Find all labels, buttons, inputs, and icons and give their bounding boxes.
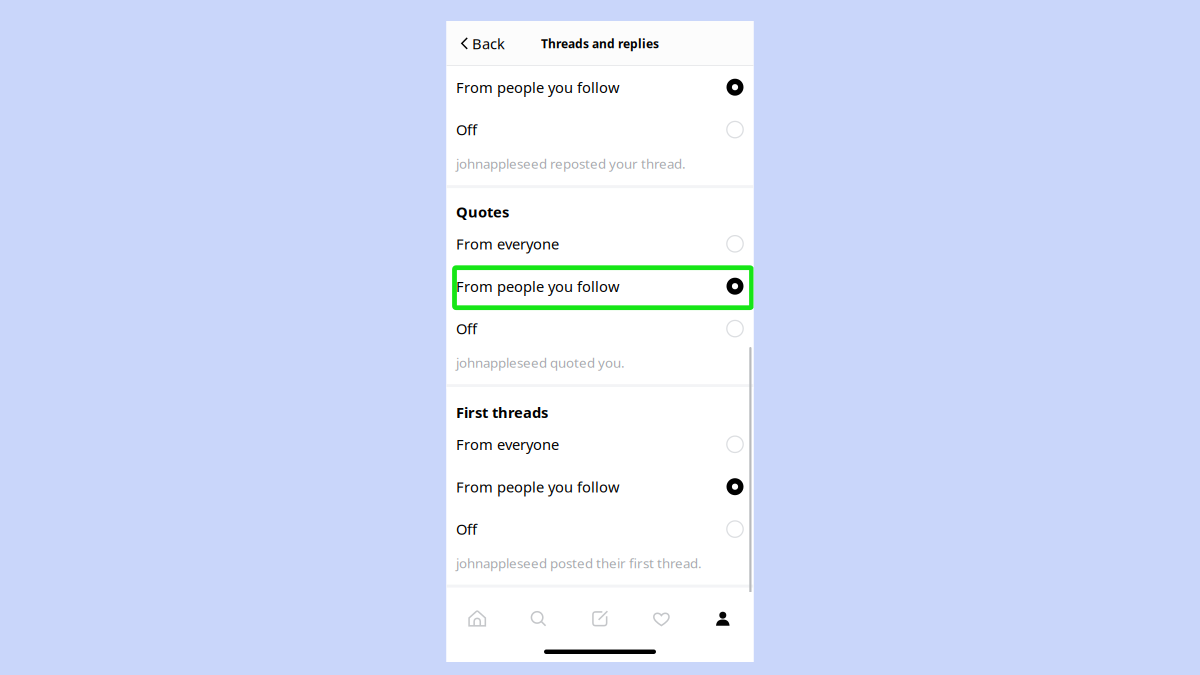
staticText: Back bbox=[472, 34, 505, 53]
staticText: Threads and replies bbox=[541, 35, 659, 51]
staticText: johnappleseed reposted your thread. bbox=[456, 155, 686, 172]
button[interactable]: From people you follow bbox=[446, 265, 753, 307]
staticText: From people you follow bbox=[456, 477, 620, 496]
staticText: From everyone bbox=[456, 435, 559, 454]
button[interactable]: Activity bbox=[631, 599, 692, 639]
button[interactable]: Profile bbox=[692, 599, 753, 639]
staticText: From everyone bbox=[456, 234, 559, 254]
staticText: Off bbox=[456, 319, 477, 338]
staticText: From people you follow bbox=[456, 276, 620, 296]
staticText: Quotes bbox=[456, 202, 509, 222]
button[interactable]: Off bbox=[446, 307, 753, 350]
staticText: johnappleseed quoted you. bbox=[456, 354, 625, 371]
button[interactable]: New thread bbox=[569, 599, 631, 639]
staticText: Off bbox=[456, 519, 477, 539]
button[interactable]: Off bbox=[446, 508, 753, 550]
button[interactable]: Back bbox=[446, 21, 515, 66]
staticText: From people you follow bbox=[456, 77, 620, 97]
button[interactable]: From everyone bbox=[446, 423, 753, 465]
button[interactable]: Home bbox=[446, 599, 508, 639]
staticText: Off bbox=[456, 120, 477, 139]
button[interactable]: From people you follow bbox=[446, 66, 753, 108]
staticText: First threads bbox=[456, 403, 548, 422]
button[interactable]: From everyone bbox=[446, 223, 753, 265]
button[interactable]: Off bbox=[446, 108, 753, 151]
button[interactable]: From people you follow bbox=[446, 465, 753, 508]
staticText: johnappleseed posted their first thread. bbox=[456, 554, 702, 572]
button[interactable]: Search bbox=[508, 599, 569, 639]
